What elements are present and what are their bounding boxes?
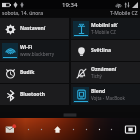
staticText: Nastavení (20, 25, 46, 32)
button[interactable]: Wi-Fi (0, 40, 69, 61)
staticText: Wi-Fi (20, 44, 33, 51)
button[interactable]: Blend (71, 84, 140, 105)
button[interactable]: Messages (3, 122, 17, 136)
staticText: T-Mobile CZ (110, 10, 138, 17)
button[interactable]: Home (52, 124, 62, 134)
staticText: Světlina (91, 47, 111, 54)
staticText: Bluetooth (20, 91, 45, 98)
button[interactable]: Oznámení (71, 62, 140, 83)
button[interactable]: Camera (123, 122, 137, 136)
button[interactable]: Mobilní síť (71, 18, 140, 39)
button[interactable]: Budík (0, 62, 69, 83)
button[interactable]: Bluetooth (0, 84, 69, 105)
staticText: 19:34 (62, 1, 78, 9)
staticText: Mobilní síť (91, 22, 118, 29)
staticText: www.blackberry (20, 51, 54, 57)
staticText: Oznámení (91, 66, 117, 73)
staticText: Vojta - MacBook (91, 95, 125, 101)
staticText: Blend (91, 88, 106, 95)
staticText: T-Mobile CZ (91, 29, 116, 35)
staticText: Tichý (91, 73, 102, 79)
staticText: sobota, 14. února (2, 10, 44, 17)
button[interactable]: Světlina (71, 40, 140, 61)
staticText: Budík (20, 69, 35, 76)
button[interactable]: Nastavení (0, 18, 69, 39)
